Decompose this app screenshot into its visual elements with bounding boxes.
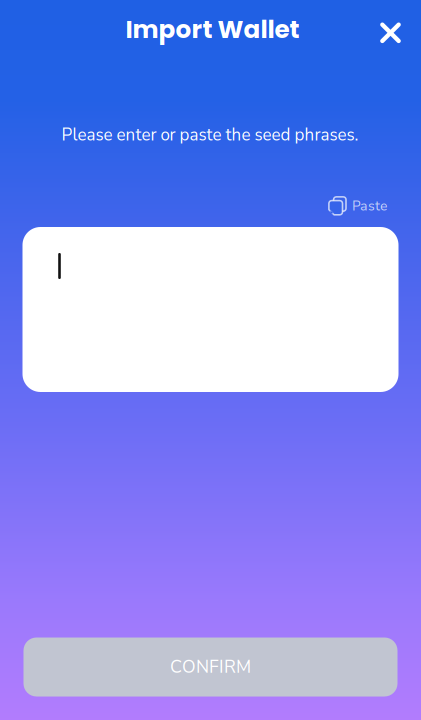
button[interactable]: CONFIRM <box>23 637 397 696</box>
button[interactable]: Seed phrase <box>22 227 398 392</box>
staticText: CONFIRM <box>170 655 251 679</box>
button[interactable]: Paste <box>324 191 391 221</box>
staticText: Please enter or paste the seed phrases. <box>61 123 358 147</box>
staticText: Paste <box>352 197 387 215</box>
button[interactable]: Close <box>367 10 413 56</box>
staticText: Import Wallet <box>125 12 299 46</box>
